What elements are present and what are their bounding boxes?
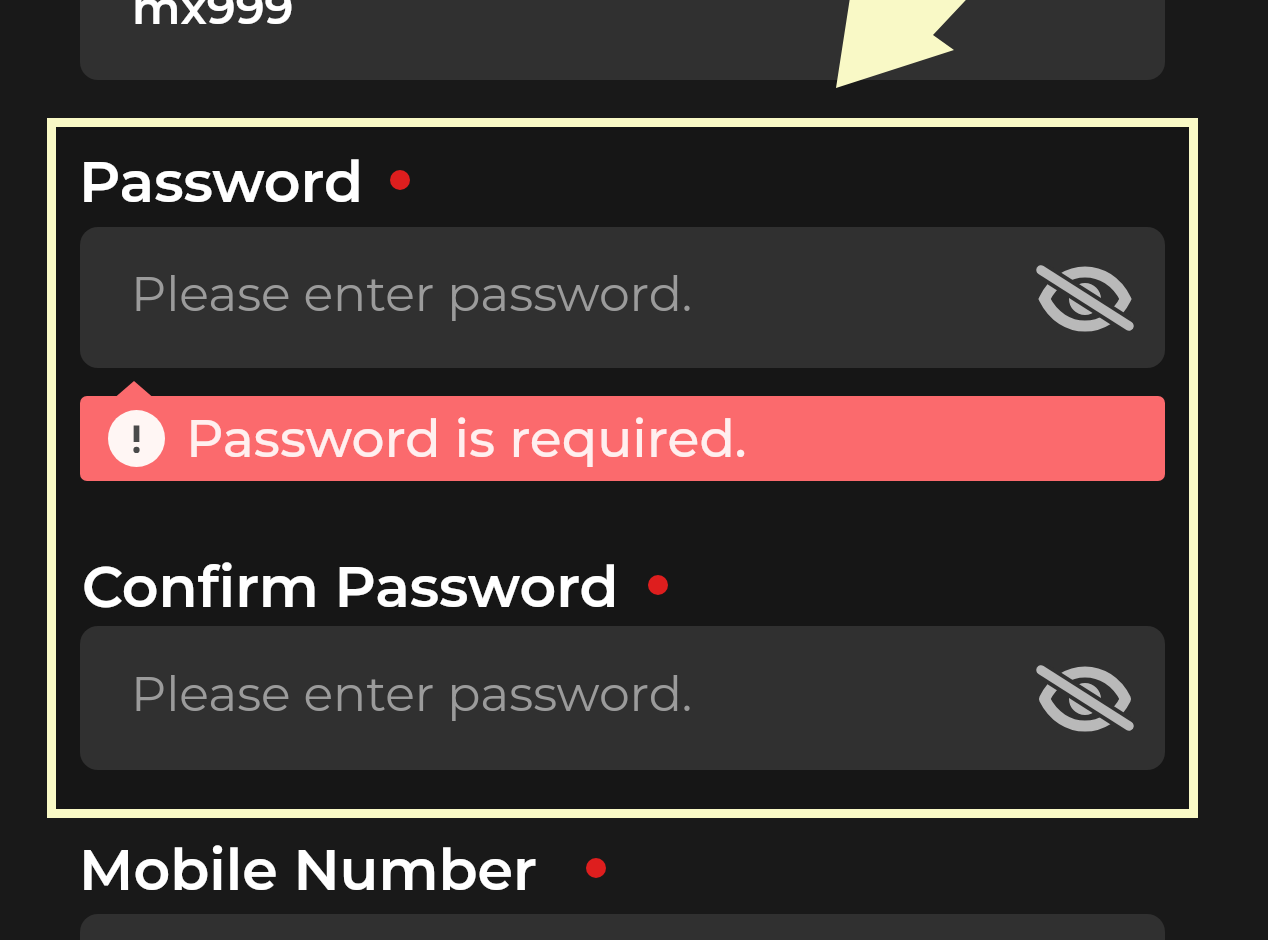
staticText: mx999 [132,0,294,35]
staticText: Password is required. [186,407,747,470]
button[interactable]: Please enter password. [80,626,1165,770]
button[interactable]: Toggle password visibility [1027,248,1143,348]
button[interactable]: mx999 [80,0,1165,80]
staticText: Mobile Number [79,835,537,904]
button[interactable]: Password is required. [80,396,1165,481]
staticText: Please enter password. [131,664,693,724]
staticText: Password [79,147,364,216]
staticText: Please enter password. [131,264,693,324]
staticText: Confirm Password [82,552,619,621]
button[interactable]: Toggle password visibility [1027,648,1143,748]
button[interactable]: Please enter password. [80,227,1165,368]
